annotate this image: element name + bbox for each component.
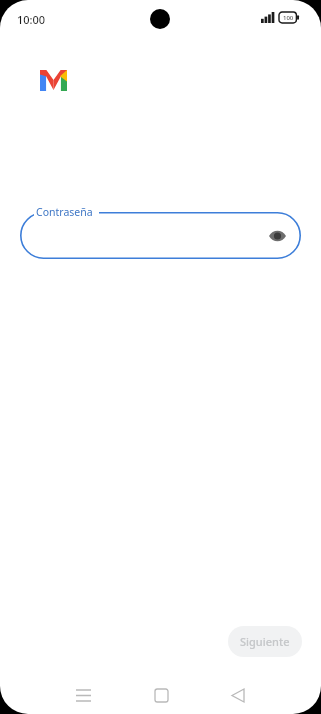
button[interactable]: Siguiente	[228, 626, 302, 657]
staticText: 10:00	[17, 12, 46, 27]
staticText: 100	[283, 14, 294, 22]
staticText: Contraseña	[36, 205, 93, 219]
button[interactable]: Atrás	[221, 678, 255, 712]
button[interactable]: Recientes	[66, 678, 100, 712]
button[interactable]: Mostrar contraseña	[261, 220, 293, 252]
button[interactable]: Mostrar contraseña	[20, 212, 301, 259]
button[interactable]: Inicio	[144, 678, 178, 712]
staticText: Siguiente	[240, 634, 290, 649]
